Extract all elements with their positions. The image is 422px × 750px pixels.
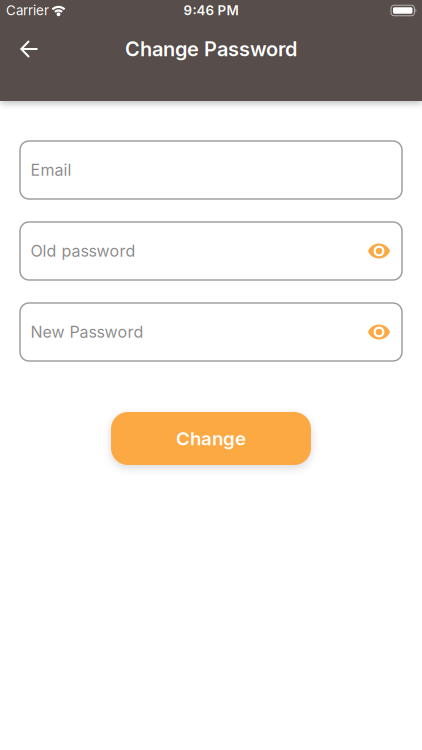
button[interactable]: Show password [368, 324, 390, 339]
staticText: Change Password [125, 37, 297, 61]
button[interactable]: Back [14, 34, 44, 64]
staticText: Old password [30, 242, 135, 260]
staticText: Carrier [6, 3, 49, 18]
button[interactable]: Change [111, 412, 311, 465]
staticText: Change [176, 427, 246, 449]
staticText: New Password [30, 323, 143, 341]
button[interactable]: Show password [368, 243, 390, 258]
staticText: Email [30, 161, 71, 179]
staticText: 9:46 PM [183, 3, 238, 18]
